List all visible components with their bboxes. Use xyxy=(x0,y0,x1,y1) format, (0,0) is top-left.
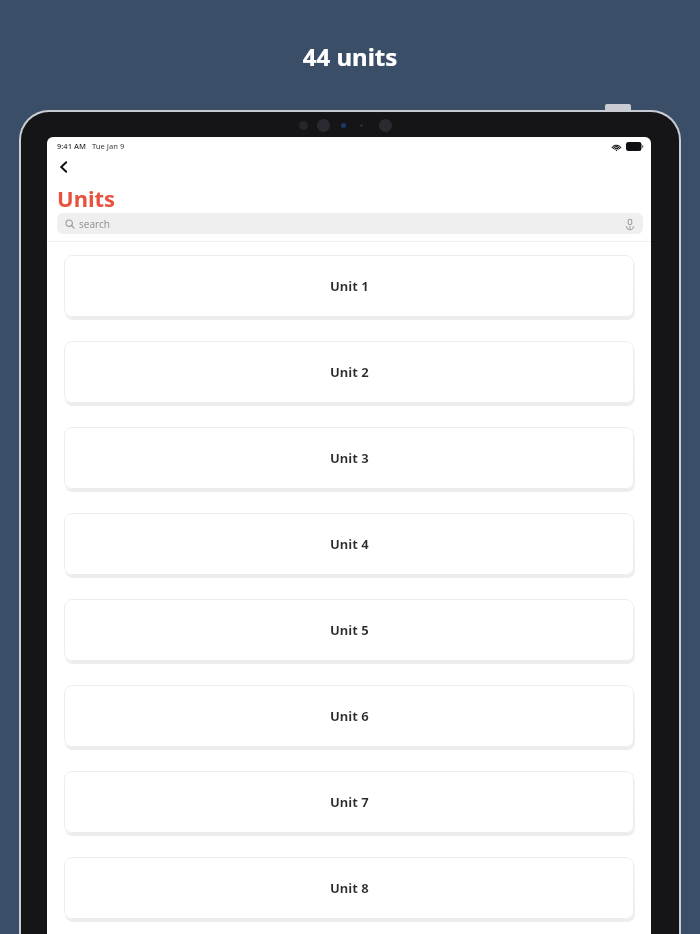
other: Voice search xyxy=(623,217,637,231)
button[interactable]: search xyxy=(57,213,643,234)
button[interactable]: Unit 6 xyxy=(64,685,634,747)
staticText: search xyxy=(79,217,110,231)
button[interactable]: Unit 3 xyxy=(64,427,634,489)
button[interactable]: Unit 1 xyxy=(64,255,634,317)
button[interactable]: Unit 2 xyxy=(64,341,634,403)
staticText: Unit 6 xyxy=(330,707,369,725)
staticText: Unit 1 xyxy=(330,277,369,295)
staticText: 9:41 AM xyxy=(57,141,86,151)
staticText: Unit 8 xyxy=(330,879,369,897)
staticText: Tue Jan 9 xyxy=(92,141,125,151)
staticText: Unit 5 xyxy=(330,621,369,639)
button[interactable]: Unit 7 xyxy=(64,771,634,833)
staticText: Unit 7 xyxy=(330,793,369,811)
staticText: Unit 3 xyxy=(330,449,369,467)
button[interactable]: Back xyxy=(51,154,77,180)
button[interactable]: Unit 5 xyxy=(64,599,634,661)
staticText: Unit 2 xyxy=(330,363,369,381)
staticText: Unit 4 xyxy=(330,535,369,553)
button[interactable]: Unit 4 xyxy=(64,513,634,575)
staticText: 44 units xyxy=(0,40,700,73)
staticText: Units xyxy=(57,183,116,213)
button[interactable]: Unit 8 xyxy=(64,857,634,919)
